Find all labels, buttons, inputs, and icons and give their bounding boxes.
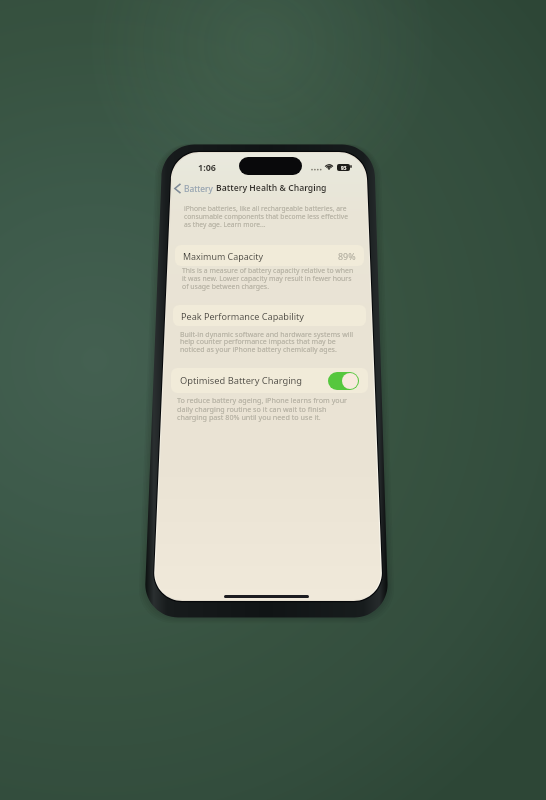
staticText: Built-in dynamic software and hardware s… <box>180 329 357 355</box>
staticText: 1:06 <box>198 161 216 173</box>
staticText: iPhone batteries, like all rechargeable … <box>184 204 354 229</box>
staticText: This is a measure of battery capacity re… <box>182 266 355 291</box>
staticText: Optimised Battery Charging <box>180 374 303 387</box>
staticText: 89% <box>338 250 356 262</box>
button[interactable]: Maximum Capacity <box>175 245 364 266</box>
button[interactable]: Peak Performance Capability <box>173 305 366 326</box>
button[interactable]: Back to Battery <box>174 178 213 198</box>
staticText: To reduce battery ageing, iPhone learns … <box>177 395 358 422</box>
button[interactable]: Optimised Battery Charging <box>171 368 368 393</box>
staticText: Battery <box>184 183 213 194</box>
staticText: Maximum Capacity <box>183 250 263 262</box>
staticText: Battery Health & Charging <box>216 182 327 194</box>
staticText: Peak Performance Capability <box>181 310 304 322</box>
staticText: 93 <box>341 165 347 171</box>
button[interactable]: Optimised Battery Charging <box>328 372 359 390</box>
